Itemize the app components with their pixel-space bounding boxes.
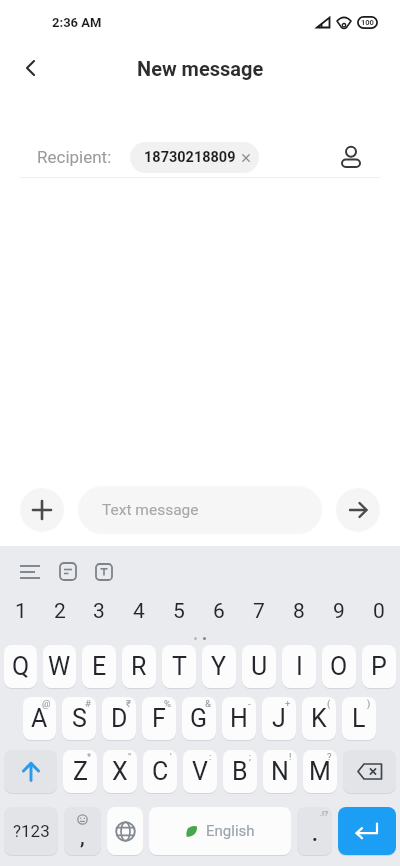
button[interactable]: English [149,807,291,855]
staticText: N [271,757,289,786]
staticText: & [205,698,211,709]
staticText: ( [327,698,331,709]
staticText: T [172,652,187,681]
button[interactable]: Text message [78,486,322,534]
staticText: D [111,704,128,733]
staticText: K [311,704,327,733]
button[interactable]: 18730218809 [130,142,259,173]
button[interactable]: N [263,750,297,793]
button[interactable]: 5 [159,590,199,632]
button[interactable]: R [122,645,156,688]
staticText: + [285,698,291,709]
staticText: W [48,652,71,681]
button[interactable]: Q [4,645,37,688]
staticText: Text message [102,501,199,519]
button[interactable] [20,488,64,532]
button[interactable] [107,807,143,855]
button[interactable]: F [142,697,176,740]
button[interactable]: ?123 [4,807,58,855]
staticText: Y [211,652,227,681]
staticText: ₹ [126,698,131,709]
button[interactable] [343,750,396,793]
staticText: , [80,825,85,850]
button[interactable]: Y [202,645,236,688]
button[interactable]: 7 [239,590,279,632]
staticText: ?123 [13,821,50,841]
button[interactable]: 6 [199,590,239,632]
button[interactable] [338,807,396,855]
staticText: E [92,652,107,681]
button[interactable]: W [43,645,76,688]
staticText: # [85,698,91,709]
staticText: 7 [253,599,265,624]
staticText: R [131,652,147,681]
button[interactable] [336,142,366,172]
staticText: " [128,751,132,762]
staticText: S [72,704,87,733]
button[interactable]: 3 [79,590,119,632]
staticText: M [309,757,331,786]
button[interactable]: 1 [1,590,40,632]
staticText: C [152,757,169,786]
staticText: 6 [213,599,225,624]
button[interactable]: B [223,750,257,793]
button[interactable]: T [162,645,196,688]
button[interactable] [59,562,77,581]
staticText: New message [137,57,264,80]
staticText: 1 [15,599,27,624]
staticText: English [206,822,255,840]
button[interactable] [4,750,57,793]
button[interactable]: M [303,750,337,793]
button[interactable]: J [262,697,296,740]
button[interactable]: X [103,750,137,793]
staticText: % [164,698,171,709]
button[interactable]: O [322,645,356,688]
button[interactable]: G [182,697,216,740]
button[interactable] [20,565,41,579]
button[interactable]: P [362,645,396,688]
staticText: ) [367,698,371,709]
staticText: L [352,704,366,733]
button[interactable]: 9 [319,590,359,632]
button[interactable]: D [102,697,136,740]
staticText: F [152,704,166,733]
button[interactable]: 2 [40,590,79,632]
button[interactable] [95,563,113,581]
button[interactable]: 0 [359,590,399,632]
button[interactable]: A [23,697,56,740]
button[interactable] [14,52,46,84]
staticText: - [248,698,251,709]
button[interactable]: , [64,807,101,855]
staticText: 2:36 AM [52,15,102,30]
staticText: : [209,751,212,762]
staticText: Z [73,757,88,786]
staticText: 3 [93,599,105,624]
button[interactable]: H [222,697,256,740]
button[interactable]: V [183,750,217,793]
button[interactable]: Z [63,750,97,793]
staticText: V [192,757,208,786]
button[interactable]: U [242,645,276,688]
button[interactable]: 4 [119,590,159,632]
staticText: @ [42,698,51,709]
button[interactable]: S [62,697,96,740]
staticText: J [272,704,286,733]
staticText: 4 [133,599,145,624]
button[interactable]: E [82,645,116,688]
button[interactable]: C [143,750,177,793]
button[interactable]: . [297,807,332,855]
button[interactable]: K [302,697,336,740]
button[interactable]: I [282,645,316,688]
staticText: B [232,757,248,786]
staticText: * [87,751,92,762]
staticText: .!? [320,809,328,818]
staticText: ; [249,751,252,762]
staticText: H [230,704,248,733]
button[interactable] [336,488,380,532]
staticText: . [312,822,318,845]
staticText: 5 [173,599,185,624]
staticText: Q [12,652,30,681]
button[interactable]: L [342,697,376,740]
button[interactable]: 8 [279,590,319,632]
staticText: X [112,757,128,786]
